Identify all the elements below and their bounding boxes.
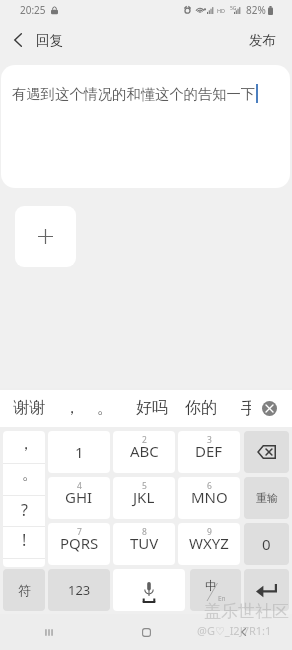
staticText: 2 — [142, 434, 147, 446]
staticText: JKL — [133, 487, 155, 507]
staticText: 好吗 — [136, 398, 168, 418]
button[interactable]: Backspace — [244, 431, 289, 473]
button[interactable]: 有遇到这个情况的和懂这个的告知一下 — [1, 65, 290, 188]
staticText: GHI — [65, 487, 93, 507]
staticText: 6 — [207, 480, 212, 492]
staticText: 盖乐世社区 — [204, 601, 289, 622]
staticText: ， — [64, 398, 80, 418]
staticText: 。 — [22, 464, 38, 484]
staticText: 重输 — [256, 491, 278, 505]
staticText: 中 — [205, 578, 217, 593]
button[interactable]: 4 — [48, 477, 110, 519]
staticText: 7 — [77, 526, 82, 538]
button[interactable]: 2 — [113, 431, 175, 473]
button[interactable]: ， — [3, 431, 45, 463]
button[interactable]: 谢谢 — [13, 396, 45, 420]
staticText: @G♡_I2J7R1:1 — [197, 623, 272, 638]
staticText: 5 — [142, 480, 147, 492]
staticText: 。 — [97, 398, 113, 418]
button[interactable]: ! — [3, 527, 45, 558]
staticText: WXYZ — [189, 533, 229, 553]
staticText: 你的 — [185, 398, 217, 418]
button[interactable]: 8 — [113, 523, 175, 565]
staticText: 手 — [241, 399, 251, 419]
button[interactable]: Recents — [0, 614, 98, 650]
staticText: 符 — [18, 582, 31, 598]
staticText: 123 — [68, 581, 91, 599]
button[interactable]: 9 — [178, 523, 240, 565]
button[interactable]: ? — [3, 496, 45, 526]
button[interactable]: 123 — [48, 569, 110, 611]
button[interactable]: Add image — [15, 206, 76, 267]
staticText: 9 — [207, 526, 212, 538]
staticText: 谢谢 — [13, 398, 45, 418]
button[interactable]: 7 — [48, 523, 110, 565]
button[interactable]: Switch language — [190, 569, 241, 611]
staticText: 20:25 — [20, 3, 46, 17]
button[interactable]: 。 — [97, 396, 113, 420]
staticText: PQRS — [60, 533, 99, 553]
button[interactable]: 3 — [178, 431, 240, 473]
staticText: 发布 — [249, 32, 276, 49]
other: Back — [14, 33, 22, 47]
button[interactable]: 符 — [3, 569, 45, 611]
staticText: HD — [217, 7, 226, 14]
staticText: ABC — [130, 441, 159, 461]
button[interactable]: 。 — [3, 464, 45, 495]
staticText: 5G — [230, 5, 237, 12]
button[interactable]: 手 — [241, 390, 251, 427]
button[interactable]: 发布 — [238, 26, 286, 54]
staticText: 8 — [142, 526, 147, 538]
staticText: 有遇到这个情况的和懂这个的告知一下 — [12, 85, 256, 103]
staticText: En — [218, 594, 226, 603]
staticText: 1 — [75, 442, 84, 462]
staticText: 回复 — [36, 32, 63, 49]
staticText: ? — [21, 499, 28, 521]
button[interactable]: Enter — [244, 569, 289, 611]
button[interactable]: Back — [6, 26, 74, 54]
button[interactable]: 0 — [244, 523, 289, 565]
staticText: ， — [18, 434, 34, 454]
staticText: MNO — [191, 487, 228, 507]
button[interactable]: 好吗 — [136, 396, 168, 420]
button[interactable]: Home — [98, 614, 195, 650]
button[interactable]: 6 — [178, 477, 240, 519]
staticText: 3 — [207, 434, 212, 446]
staticText: DEF — [195, 441, 223, 461]
button[interactable]: 重输 — [244, 477, 289, 519]
button[interactable]: 1 — [48, 431, 110, 473]
button[interactable]: Space — [113, 569, 185, 611]
staticText: TUV — [130, 533, 159, 553]
button[interactable]: Hide keyboard — [262, 401, 277, 416]
button[interactable]: 5 — [113, 477, 175, 519]
button[interactable]: ， — [64, 396, 80, 420]
staticText: 82% — [246, 3, 266, 17]
staticText: 0 — [262, 534, 271, 554]
button[interactable]: Back — [195, 614, 292, 650]
button[interactable]: 你的 — [185, 396, 217, 420]
staticText: ! — [22, 529, 27, 551]
staticText: 4 — [77, 480, 82, 492]
